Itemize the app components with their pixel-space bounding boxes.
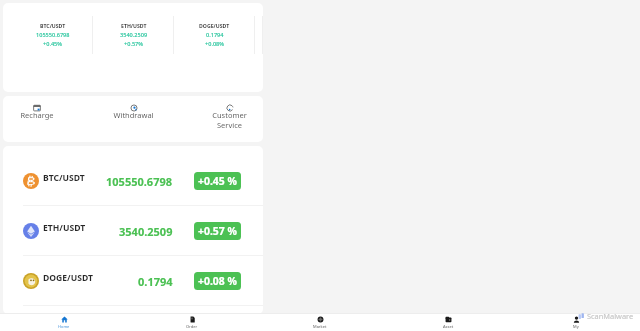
staticText: Home (58, 324, 70, 329)
staticText: DOGE/USDT (43, 272, 93, 284)
staticText: +0.08 % (198, 274, 237, 288)
staticText: DOGE/USDT (199, 22, 230, 29)
button[interactable]: Market (256, 314, 384, 331)
staticText: +0.45% (43, 40, 63, 48)
staticText: ETH/USDT (43, 222, 86, 234)
staticText: Customer Service (212, 110, 247, 130)
button[interactable]: Asset (384, 314, 512, 331)
button[interactable]: DOGE/USDT (3, 256, 263, 306)
staticText: BTC/USDT (43, 172, 85, 184)
button[interactable]: Order (128, 314, 256, 331)
staticText: My (573, 324, 579, 329)
staticText: +0.57 % (198, 224, 237, 238)
staticText: 3540.2509 (120, 31, 148, 39)
button[interactable]: BTC/USDT (12, 3, 93, 92)
button[interactable]: Customer Service (196, 96, 263, 142)
staticText: 105550.6798 (106, 174, 173, 189)
button[interactable]: Withdrawal (100, 96, 167, 142)
button[interactable]: Recharge (3, 96, 70, 142)
button[interactable]: ETH/USDT (93, 3, 174, 92)
button[interactable]: DOGE/USDT (174, 3, 255, 92)
button[interactable]: Home (0, 314, 128, 331)
staticText: BTC/USDT (40, 22, 66, 29)
button[interactable]: My (512, 314, 640, 331)
button[interactable]: ETH/USDT (3, 206, 263, 256)
staticText: 105550.6798 (36, 31, 70, 39)
staticText: ETH/USDT (121, 22, 147, 29)
staticText: +0.57% (124, 40, 144, 48)
staticText: ScanMalware (587, 311, 634, 321)
staticText: Withdrawal (113, 110, 154, 120)
staticText: 0.1794 (138, 274, 173, 289)
button[interactable]: BTC/USDT (3, 156, 263, 206)
staticText: 3540.2509 (119, 224, 173, 239)
staticText: 0.1794 (206, 31, 224, 39)
staticText: +0.08% (205, 40, 225, 48)
staticText: Order (186, 324, 198, 329)
staticText: Recharge (20, 110, 54, 120)
button[interactable] (255, 3, 263, 92)
staticText: +0.45 % (198, 174, 237, 188)
staticText: Asset (443, 324, 454, 329)
staticText: Market (313, 324, 327, 329)
